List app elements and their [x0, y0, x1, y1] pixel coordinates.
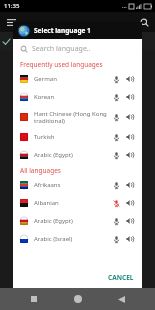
button[interactable]: Speak [124, 91, 136, 103]
button[interactable]: Speak [124, 73, 136, 85]
button[interactable]: Speak [124, 215, 136, 227]
staticText: Select language 1 [34, 26, 91, 35]
button[interactable]: Arabic (Egypt) [13, 212, 142, 230]
button[interactable]: CANCEL [100, 269, 142, 286]
button[interactable]: Turkish [13, 128, 142, 146]
button[interactable]: Korean [13, 88, 142, 106]
button[interactable]: Albanian [13, 194, 142, 212]
staticText: German [34, 75, 110, 83]
button[interactable]: Microphone [110, 131, 122, 143]
button[interactable]: Recents [25, 290, 43, 308]
button[interactable]: Home [69, 290, 87, 308]
button[interactable]: Speak [124, 233, 136, 245]
staticText: CANCEL [108, 273, 134, 282]
button[interactable]: Arabic (Israel) [13, 230, 142, 248]
button[interactable]: Speak [124, 131, 136, 143]
button[interactable]: Speak [124, 149, 136, 161]
button[interactable]: Arabic (Egypt) [13, 146, 142, 164]
staticText: All languages [20, 166, 61, 175]
button[interactable]: Afrikaans [13, 176, 142, 194]
button[interactable]: Menu [4, 15, 18, 29]
staticText: Search language.. [32, 44, 91, 54]
button[interactable]: Speak [124, 179, 136, 191]
staticText: Turkish [34, 133, 110, 141]
button[interactable]: Microphone [110, 73, 122, 85]
button[interactable]: Speak [124, 197, 136, 209]
staticText: Hant Chinese (Hong Kong traditional) [34, 110, 110, 125]
button[interactable]: German [13, 70, 142, 88]
staticText: Arabic (Egypt) [34, 217, 110, 225]
staticText: Arabic (Egypt) [34, 151, 110, 159]
button[interactable]: Microphone [110, 197, 122, 209]
staticText: Afrikaans [34, 181, 110, 189]
button[interactable]: Speak [124, 111, 136, 123]
staticText: Frequently used languages [20, 60, 103, 69]
button[interactable]: Back [112, 290, 130, 308]
button[interactable]: Search language.. [13, 39, 142, 58]
button[interactable]: Microphone [110, 149, 122, 161]
button[interactable]: Microphone [110, 91, 122, 103]
button[interactable]: Microphone [110, 233, 122, 245]
staticText: Arabic (Israel) [34, 235, 110, 243]
staticText: Albanian [34, 199, 110, 207]
staticText: Korean [34, 93, 110, 101]
button[interactable]: Hant Chinese (Hong Kong traditional) [13, 106, 142, 128]
staticText: … [122, 2, 127, 10]
button[interactable]: Microphone [110, 179, 122, 191]
button[interactable]: Search [137, 15, 151, 29]
button[interactable]: Microphone [110, 111, 122, 123]
staticText: 11:35 [4, 2, 20, 10]
button[interactable]: Microphone [110, 215, 122, 227]
